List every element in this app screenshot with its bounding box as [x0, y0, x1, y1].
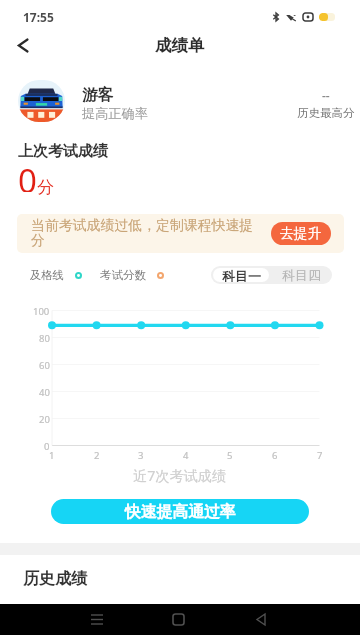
staticText: 科目一 [222, 268, 261, 282]
staticText: 20 [39, 413, 50, 426]
staticText: 100 [33, 305, 50, 318]
staticText: 40 [39, 386, 50, 399]
staticText: 历史成绩 [23, 569, 87, 589]
staticText: 快速提高通过率 [125, 502, 236, 522]
button[interactable]: Back [232, 604, 289, 635]
staticText: 分 [37, 177, 54, 198]
staticText: 当前考试成绩过低，定制课程快速提分 [31, 217, 257, 250]
staticText: 17:55 [23, 9, 54, 25]
staticText: 7 [317, 449, 323, 462]
button[interactable]: Back [0, 29, 46, 62]
button[interactable]: Recents [68, 604, 125, 635]
staticText: 60 [39, 359, 50, 372]
button[interactable]: Home [150, 604, 207, 635]
button[interactable]: 去提升 [271, 222, 331, 245]
staticText: 去提升 [280, 225, 322, 242]
staticText: 80 [39, 332, 50, 345]
staticText: 5 [227, 449, 233, 462]
staticText: -- [322, 87, 330, 103]
staticText: 历史最高分 [297, 106, 355, 120]
staticText: 上次考试成绩 [18, 142, 108, 161]
staticText: 游客 [82, 85, 114, 105]
button[interactable]: 科目一 [213, 268, 269, 282]
staticText: 0 [44, 440, 50, 453]
staticText: 6 [272, 449, 278, 462]
staticText: 考试分数 [100, 268, 146, 282]
staticText: 科目四 [282, 267, 321, 283]
staticText: 2 [94, 449, 100, 462]
staticText: 提高正确率 [82, 105, 148, 122]
staticText: 0 [18, 158, 37, 192]
button[interactable]: 快速提高通过率 [51, 499, 309, 524]
staticText: 1 [49, 449, 55, 462]
staticText: 4 [183, 449, 189, 462]
button[interactable]: 科目四 [271, 266, 332, 284]
staticText: 成绩单 [155, 35, 205, 56]
staticText: 及格线 [30, 268, 64, 282]
staticText: 近7次考试成绩 [133, 466, 227, 485]
staticText: 3 [138, 449, 144, 462]
